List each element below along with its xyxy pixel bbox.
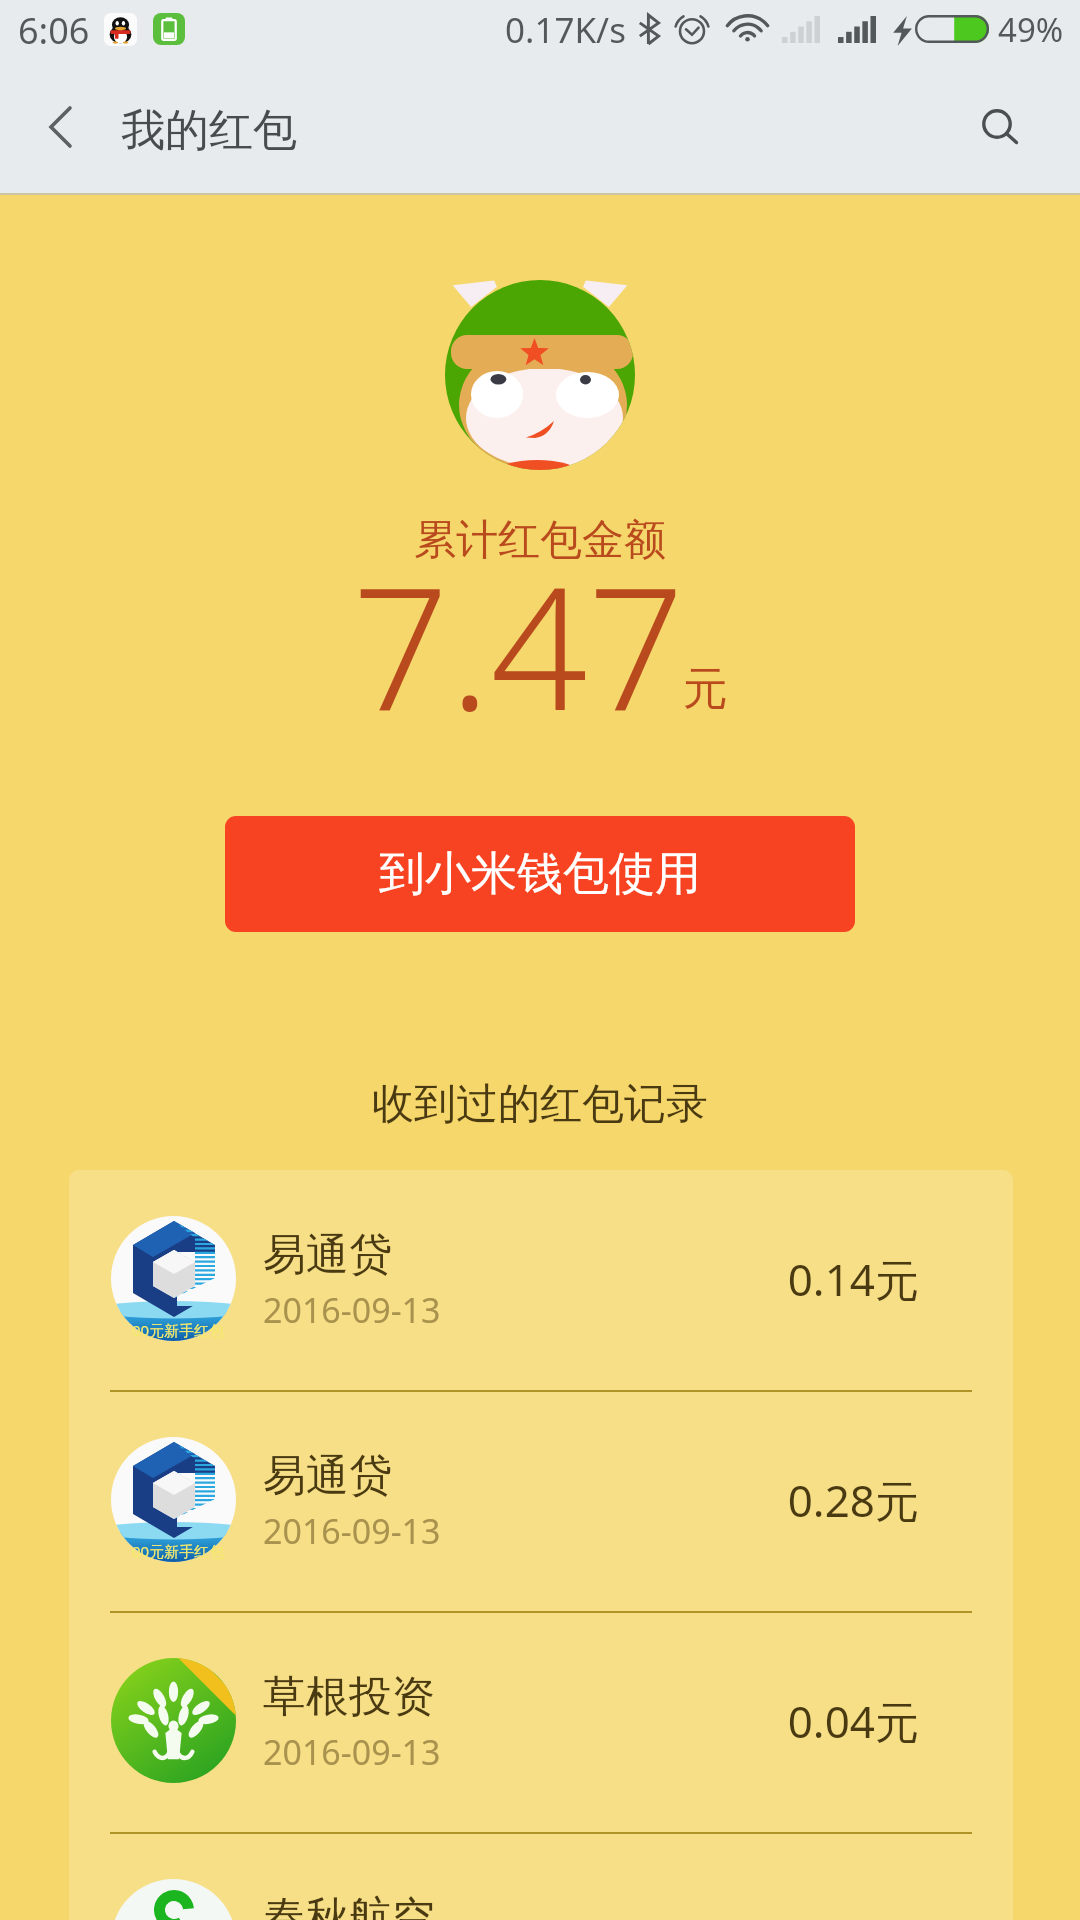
staticText: 0.02元 (69, 1912, 919, 1920)
staticText: 累计红包金额 (0, 514, 1080, 567)
staticText: 0.04元 (69, 1691, 919, 1751)
staticText: 6:06 (18, 6, 90, 55)
staticText: 我的红包 (121, 103, 297, 158)
staticText: 2016-09-13 (263, 1508, 441, 1554)
staticText: 00元新手红包 (132, 1541, 225, 1561)
button[interactable]: 草根投资 (69, 1612, 1013, 1833)
staticText: 0.17K/s (505, 6, 626, 54)
staticText: 2016-09-13 (263, 1729, 441, 1775)
staticText: 0.28元 (69, 1470, 919, 1530)
staticText: 00元新手红包 (132, 1320, 225, 1340)
button[interactable]: 到小米钱包使用 (225, 816, 855, 932)
staticText: 春秋航空 (263, 1891, 435, 1920)
button[interactable]: 00元新手红包 (69, 1391, 1013, 1612)
button[interactable]: Search (957, 84, 1037, 164)
staticText: 7.47 (352, 528, 685, 760)
staticText: 元 (683, 661, 728, 718)
staticText: 49% (998, 7, 1064, 52)
staticText: 到小米钱包使用 (379, 845, 701, 903)
staticText: 草根投资 (263, 1670, 435, 1724)
button[interactable]: 春秋航空 (69, 1833, 1013, 1920)
staticText: 2016-09-13 (263, 1287, 441, 1333)
button[interactable]: 00元新手红包 (69, 1170, 1013, 1391)
staticText: 易通贷 (263, 1449, 392, 1503)
staticText: 0.14元 (69, 1249, 919, 1309)
button[interactable]: Back (20, 87, 100, 167)
staticText: 易通贷 (263, 1228, 392, 1282)
staticText: 收到过的红包记录 (0, 1078, 1080, 1131)
